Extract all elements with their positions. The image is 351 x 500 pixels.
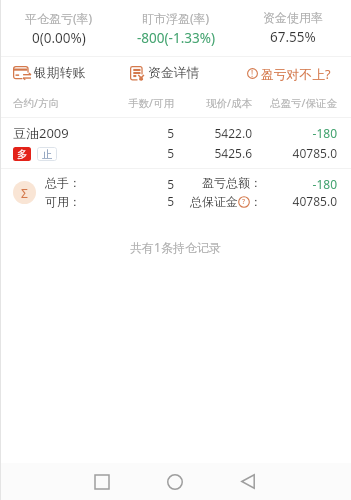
staticText: 0(0.00%) [32, 29, 86, 47]
staticText: 手数/可用 [124, 96, 174, 110]
staticText: 银期转账 [34, 65, 86, 81]
staticText: 40785.0 [262, 145, 337, 161]
staticText: 资金使用率 [263, 10, 323, 25]
staticText: 5 [124, 145, 174, 161]
staticText: 现价/成本 [202, 96, 252, 110]
staticText: 止 [42, 148, 53, 161]
staticText: ： [250, 194, 262, 209]
staticText: 总保证金 [190, 194, 238, 209]
staticText: -800(-1.33%) [137, 29, 215, 47]
staticText: 总手： [45, 175, 81, 190]
button[interactable]: Back [225, 463, 271, 500]
staticText: 盯市浮盈(率) [142, 10, 210, 26]
staticText: 5 [124, 176, 174, 192]
staticText: 5422.0 [202, 125, 252, 141]
staticText: 合约/方向 [13, 96, 124, 110]
staticText: 总盈亏/保证金 [262, 96, 337, 110]
staticText: 豆油2009 [13, 124, 69, 142]
staticText: -180 [262, 125, 337, 141]
staticText: 共有1条持仓记录 [0, 239, 351, 255]
staticText: 5425.6 [202, 145, 252, 161]
staticText: Σ [21, 185, 28, 201]
staticText: 多 [17, 148, 28, 161]
button[interactable]: 资金详情 [117, 57, 234, 89]
staticText: 盈亏对不上? [261, 65, 331, 82]
button[interactable]: Home [152, 463, 198, 500]
staticText: 资金详情 [148, 65, 200, 81]
staticText: 5 [124, 125, 174, 141]
staticText: ! [251, 68, 254, 79]
staticText: 67.55% [270, 28, 316, 46]
staticText: 盈亏总额： [202, 175, 262, 190]
staticText: 平仓盈亏(率) [25, 10, 93, 26]
staticText: 5 [124, 193, 174, 209]
staticText: ? [242, 197, 246, 207]
button[interactable]: 豆油2009 [0, 118, 351, 168]
button[interactable]: ! [234, 57, 351, 89]
staticText: 可用： [45, 194, 81, 209]
button[interactable]: Recent apps [79, 463, 125, 500]
staticText: 40785.0 [262, 193, 337, 209]
button[interactable]: 银期转账 [0, 57, 117, 89]
staticText: -180 [262, 176, 337, 192]
